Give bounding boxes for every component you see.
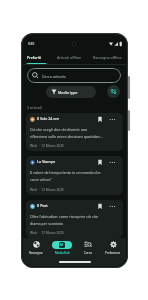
staticText: Il Post <box>37 203 48 208</box>
staticText: diamo per scontato <box>30 221 63 226</box>
staticText: riflessione sulle micro-decisioni quotid… <box>30 134 103 139</box>
staticText: 3 articoli <box>27 105 42 110</box>
staticText: Web · 12 Marzo 2025 <box>30 143 64 147</box>
staticText: Rassegna <box>29 251 43 255</box>
staticText: Il valore del tempo lento in un mondo ch… <box>30 170 101 175</box>
button[interactable]: Cerca articolo <box>27 68 121 83</box>
staticText: Media type <box>58 90 78 95</box>
button[interactable] <box>97 116 103 123</box>
button[interactable]: Il Sole 24 ore <box>26 113 123 151</box>
staticText: La Stampa <box>37 159 56 164</box>
button[interactable]: Rassegna <box>24 238 48 260</box>
button[interactable]: M <box>50 238 74 260</box>
staticText: Web · 12 Marzo 2025 <box>30 187 64 191</box>
button[interactable]: Articoli offline <box>57 55 82 60</box>
button[interactable] <box>109 159 116 166</box>
button[interactable]: La Stampa <box>26 156 123 195</box>
button[interactable] <box>97 203 103 210</box>
staticText: 9:30 <box>28 42 35 46</box>
staticText: M <box>60 243 64 247</box>
staticText: Cerca articolo <box>42 74 66 79</box>
button[interactable] <box>109 116 116 123</box>
button[interactable]: Preferenze <box>101 238 126 260</box>
button[interactable]: Cerca <box>78 238 98 260</box>
button[interactable] <box>97 159 103 166</box>
button[interactable]: Il Post <box>26 200 123 238</box>
staticText: Web · 12 Marzo 2025 <box>30 230 64 234</box>
button[interactable]: Preferiti <box>27 55 42 60</box>
staticText: Il Sole 24 ore <box>37 116 60 121</box>
staticText: corre veloce" <box>30 177 52 182</box>
staticText: Oltre l'abitudine: come riscoprire ciò c… <box>30 214 98 219</box>
button[interactable] <box>107 85 120 98</box>
staticText: Ciò che scegli dice chi diventi: una <box>30 127 88 132</box>
staticText: MediaHub <box>55 251 70 255</box>
button[interactable]: Media type <box>46 86 96 98</box>
button[interactable]: Rassegna offline <box>93 55 122 60</box>
staticText: Preferenze <box>105 251 121 255</box>
staticText: Cerca <box>84 251 92 255</box>
button[interactable] <box>109 203 116 210</box>
